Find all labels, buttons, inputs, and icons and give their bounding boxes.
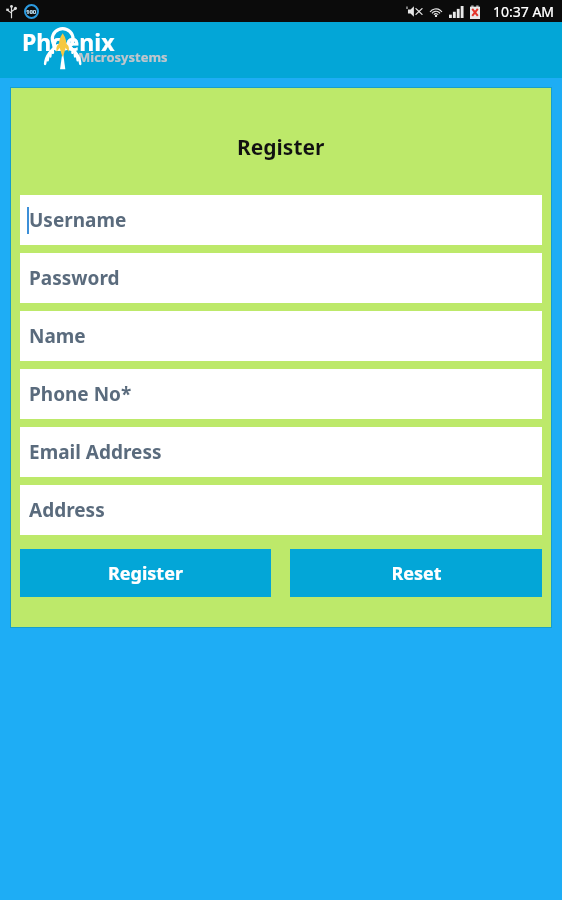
button[interactable]: Email Address	[20, 427, 542, 477]
staticText: Register	[237, 133, 325, 162]
button[interactable]: Reset	[290, 549, 542, 597]
staticText: 10:37 AM	[493, 2, 555, 21]
button[interactable]: Register	[20, 549, 271, 597]
staticText: Address	[29, 497, 105, 523]
staticText: Username	[29, 207, 127, 233]
button[interactable]: Password	[20, 253, 542, 303]
button[interactable]: Phoenix Microsystems	[20, 24, 180, 76]
staticText: Register	[108, 561, 183, 586]
button[interactable]: Username	[20, 195, 542, 245]
button[interactable]: Name	[20, 311, 542, 361]
button[interactable]: Phone No*	[20, 369, 542, 419]
staticText: Name	[29, 323, 86, 349]
staticText: 100	[26, 8, 37, 16]
staticText: Password	[29, 265, 120, 291]
button[interactable]: Address	[20, 485, 542, 535]
staticText: Reset	[391, 561, 442, 586]
staticText: Email Address	[29, 439, 162, 465]
staticText: Microsystems	[78, 48, 168, 66]
staticText: Phone No*	[29, 381, 132, 407]
staticText: Phoenix	[22, 26, 115, 57]
